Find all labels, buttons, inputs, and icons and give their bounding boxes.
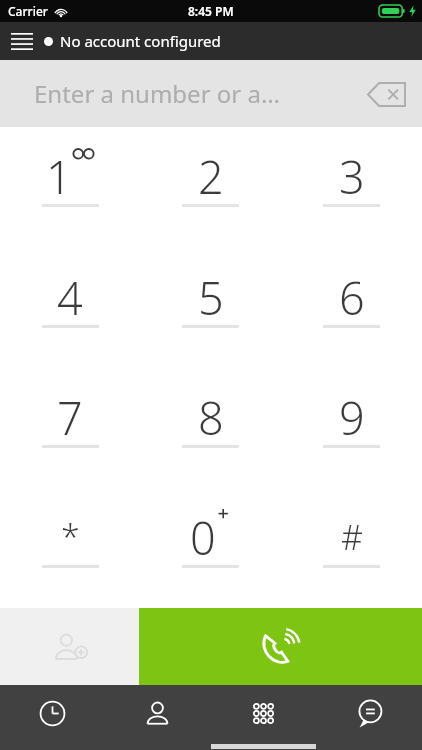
button[interactable]: Dialpad <box>210 685 316 750</box>
staticText: Enter a number or a… <box>34 77 280 110</box>
staticText: 8:45 PM <box>188 3 234 19</box>
button[interactable]: Menu <box>0 22 44 60</box>
staticText: 0 <box>190 507 216 568</box>
button[interactable]: 8 <box>140 368 281 488</box>
button[interactable]: Messages <box>316 685 422 750</box>
staticText: 6 <box>339 267 365 328</box>
button[interactable]: * <box>0 488 140 608</box>
button[interactable]: 0 <box>140 488 281 608</box>
button[interactable]: 2 <box>140 127 281 248</box>
staticText: 7 <box>57 387 83 448</box>
button[interactable]: Enter a number or a… <box>0 60 422 127</box>
button[interactable]: Call <box>139 608 422 685</box>
staticText: No account configured <box>60 31 221 51</box>
button[interactable]: Recents <box>0 685 105 750</box>
button[interactable]: 4 <box>0 248 140 368</box>
staticText: 9 <box>339 387 365 448</box>
staticText: 4 <box>57 267 83 328</box>
button[interactable]: 3 <box>281 127 422 248</box>
button[interactable]: 1 <box>0 127 140 248</box>
staticText: 5 <box>198 267 224 328</box>
button[interactable]: Contacts <box>105 685 210 750</box>
button[interactable]: 7 <box>0 368 140 488</box>
button[interactable]: # <box>281 488 422 608</box>
staticText: 1 <box>46 146 72 207</box>
staticText: 8 <box>198 387 224 448</box>
button[interactable]: 9 <box>281 368 422 488</box>
button[interactable]: Backspace <box>362 73 410 115</box>
staticText: 2 <box>198 146 224 207</box>
staticText: Carrier <box>8 3 48 19</box>
staticText: * <box>61 514 80 560</box>
staticText: # <box>341 514 363 560</box>
button[interactable]: 6 <box>281 248 422 368</box>
button[interactable]: No account configured <box>44 31 221 51</box>
staticText: 3 <box>339 146 365 207</box>
button[interactable]: 5 <box>140 248 281 368</box>
